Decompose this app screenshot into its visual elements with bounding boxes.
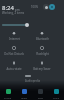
button[interactable]: Bluetooth: [28, 29, 56, 43]
button[interactable]: Auto-rotate: [0, 59, 28, 73]
staticText: Phone: [4, 96, 12, 99]
staticText: Flashlight: [36, 52, 49, 56]
button[interactable]: Files: [32, 87, 48, 99]
staticText: Internet: [9, 37, 20, 41]
staticText: pm: [14, 8, 20, 12]
staticText: Do Not Disturb: [4, 52, 24, 56]
button[interactable]: Phone: [0, 87, 16, 99]
staticText: Files: [38, 96, 43, 99]
staticText: Auto-rotate: [6, 67, 22, 71]
button[interactable]: Brightness: [1, 21, 55, 28]
button[interactable]: Flashlight: [28, 44, 56, 58]
button[interactable]: Maps: [16, 87, 32, 99]
staticText: Bluetooth: [36, 37, 49, 41]
button[interactable]: Account: [49, 4, 55, 10]
button[interactable]: Clock: [48, 87, 64, 99]
staticText: 8:24: [2, 4, 14, 12]
button[interactable]: Settings: [43, 4, 49, 10]
staticText: Audiopedia: [25, 79, 40, 83]
button[interactable]: Battery Saver: [28, 59, 56, 73]
staticText: 100%: [31, 5, 39, 9]
staticText: Battery Saver: [33, 67, 51, 71]
staticText: Working, 2 items: [2, 11, 25, 15]
staticText: Clock: [53, 96, 59, 99]
staticText: Maps: [21, 96, 28, 99]
button[interactable]: Internet: [0, 29, 28, 43]
button[interactable]: Do Not Disturb: [0, 44, 28, 58]
